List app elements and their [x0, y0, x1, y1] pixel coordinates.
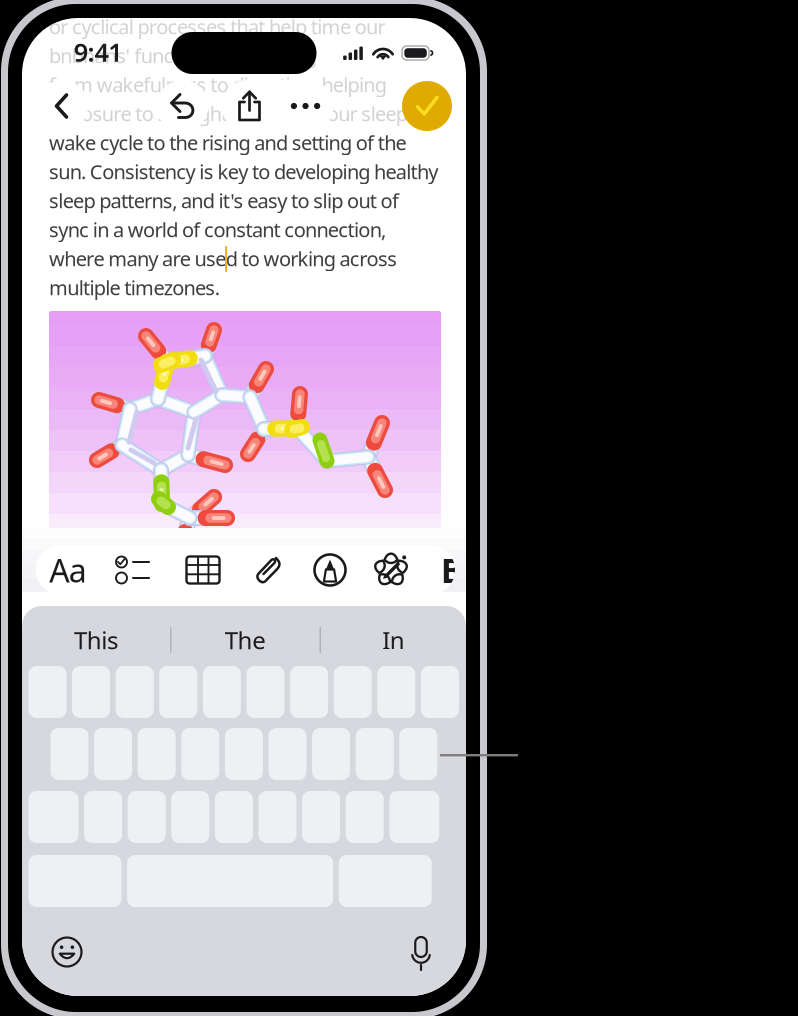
- button[interactable]: Key: [171, 791, 209, 843]
- button[interactable]: Undo: [156, 80, 208, 132]
- staticText: exposure to sunlight helps sync our slee…: [49, 100, 413, 127]
- button[interactable]: Key: [28, 791, 78, 843]
- button[interactable]: Table: [178, 545, 228, 595]
- button[interactable]: Checklist: [108, 545, 158, 595]
- button[interactable]: Key: [346, 791, 384, 843]
- button[interactable]: Back: [36, 80, 88, 132]
- button[interactable]: Key: [356, 728, 394, 780]
- button[interactable]: In: [321, 616, 466, 664]
- button[interactable]: Key: [302, 791, 340, 843]
- button[interactable]: Done: [402, 81, 452, 131]
- button[interactable]: Key: [258, 791, 296, 843]
- button[interactable]: Markup: [305, 545, 355, 595]
- button[interactable]: Key: [312, 728, 350, 780]
- staticText: This: [74, 624, 118, 656]
- button[interactable]: Key: [94, 728, 132, 780]
- button[interactable]: Key: [84, 791, 122, 843]
- staticText: multiple timezones.: [49, 274, 220, 301]
- staticText: 9:41: [74, 35, 122, 69]
- button[interactable]: Key: [28, 855, 121, 907]
- button[interactable]: Key: [116, 666, 154, 718]
- staticText: sun. Consistency is key to developing he…: [49, 158, 438, 185]
- button[interactable]: Key: [50, 728, 88, 780]
- button[interactable]: Key: [421, 666, 459, 718]
- button[interactable]: Key: [389, 791, 439, 843]
- button[interactable]: Key: [246, 666, 284, 718]
- staticText: where many are used to working across: [49, 245, 397, 272]
- staticText: wake cycle to the rising and setting of …: [49, 129, 406, 156]
- button[interactable]: Bold: [441, 545, 465, 595]
- staticText: or cyclical processes that help time our: [49, 13, 385, 40]
- button[interactable]: Key: [399, 728, 437, 780]
- button[interactable]: Attach file: [244, 545, 294, 595]
- button[interactable]: Text format: [43, 545, 93, 595]
- staticText: from wakefulness to digestion, helping: [49, 71, 387, 98]
- button[interactable]: Dictate: [398, 929, 444, 975]
- button[interactable]: Key: [268, 728, 306, 780]
- button[interactable]: Key: [334, 666, 372, 718]
- button[interactable]: Key: [377, 666, 415, 718]
- button[interactable]: Key: [203, 666, 241, 718]
- button[interactable]: Key: [138, 728, 176, 780]
- button[interactable]: Key: [72, 666, 110, 718]
- staticText: bnbhans' functions, everything: [49, 42, 317, 69]
- button[interactable]: Key: [225, 728, 263, 780]
- button[interactable]: Key: [28, 666, 66, 718]
- staticText: sleep patterns, and it's easy to slip ou…: [49, 187, 399, 214]
- button[interactable]: This: [22, 616, 170, 664]
- staticText: The: [225, 624, 266, 656]
- button[interactable]: Emoji keyboard: [44, 929, 90, 975]
- button[interactable]: Key: [181, 728, 219, 780]
- button[interactable]: Key: [159, 666, 197, 718]
- staticText: In: [382, 624, 405, 656]
- staticText: sync in a world of constant connection,: [49, 216, 386, 243]
- button[interactable]: Key: [290, 666, 328, 718]
- staticText: B: [441, 548, 463, 592]
- staticText: Aa: [49, 549, 87, 591]
- button[interactable]: More: [277, 80, 333, 132]
- button[interactable]: Writing Tools: [366, 545, 416, 595]
- button[interactable]: Share: [221, 80, 277, 132]
- button[interactable]: The: [171, 616, 319, 664]
- button[interactable]: Key: [128, 791, 166, 843]
- button[interactable]: Key: [215, 791, 253, 843]
